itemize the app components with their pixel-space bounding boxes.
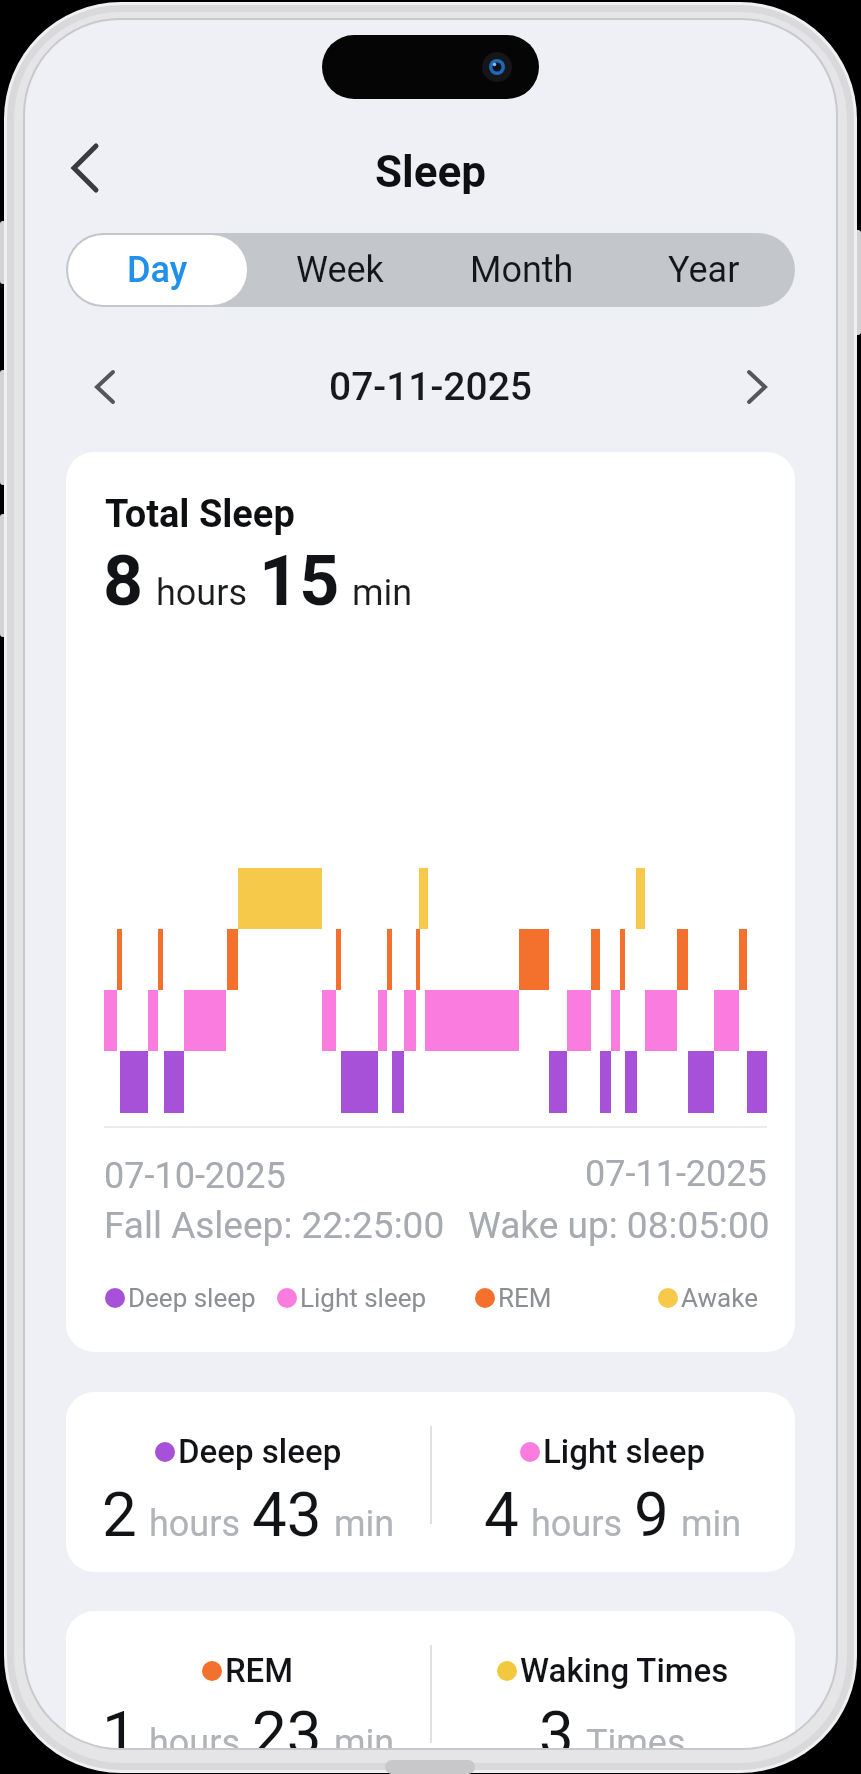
staticText: Day [127, 249, 188, 291]
staticText: 3 [539, 1697, 574, 1748]
staticText: hours [156, 572, 247, 614]
staticText: 23 [252, 1697, 322, 1748]
button[interactable] [733, 363, 781, 411]
staticText: 2 [102, 1478, 137, 1551]
staticText: Awake [681, 1283, 758, 1313]
staticText: Total Sleep [105, 492, 295, 537]
staticText: 8 [103, 540, 144, 622]
staticText: Times [586, 1722, 686, 1748]
staticText: hours [149, 1503, 240, 1545]
button[interactable] [61, 144, 109, 192]
staticText: Fall Asleep: 22:25:00 [104, 1204, 445, 1247]
staticText: REM [225, 1651, 294, 1690]
staticText: 15 [259, 540, 340, 622]
staticText: min [334, 1503, 395, 1545]
staticText: Waking Times [520, 1651, 729, 1690]
button[interactable]: REM [66, 1611, 430, 1748]
staticText: 07-11-2025 [329, 364, 532, 410]
staticText: Week [296, 249, 384, 291]
button[interactable]: Month [431, 233, 613, 307]
staticText: 43 [252, 1478, 322, 1551]
staticText: REM [498, 1283, 552, 1313]
staticText: 07-10-2025 [104, 1155, 286, 1197]
staticText: hours [531, 1503, 622, 1545]
staticText: min [352, 572, 413, 614]
staticText: Month [470, 249, 574, 291]
staticText: min [681, 1503, 742, 1545]
staticText: 4 [484, 1478, 519, 1551]
button[interactable]: Waking Times [430, 1611, 795, 1748]
staticText: Light sleep [300, 1283, 427, 1313]
staticText: Wake up: 08:05:00 [468, 1204, 770, 1247]
button[interactable]: Deep sleep [66, 1392, 430, 1572]
staticText: Deep sleep [128, 1283, 256, 1313]
staticText: hours [149, 1722, 240, 1748]
button[interactable]: Day [68, 235, 247, 305]
staticText: 1 [102, 1697, 137, 1748]
button[interactable] [81, 363, 129, 411]
button[interactable]: Week [249, 233, 431, 307]
staticText: Deep sleep [178, 1432, 342, 1471]
staticText: min [334, 1722, 395, 1748]
staticText: Light sleep [543, 1432, 706, 1471]
button[interactable]: Light sleep [430, 1392, 795, 1572]
staticText: 07-11-2025 [585, 1153, 767, 1195]
staticText: 9 [634, 1478, 669, 1551]
staticText: Year [668, 249, 740, 291]
staticText: Sleep [375, 146, 487, 194]
button[interactable]: Year [613, 233, 795, 307]
